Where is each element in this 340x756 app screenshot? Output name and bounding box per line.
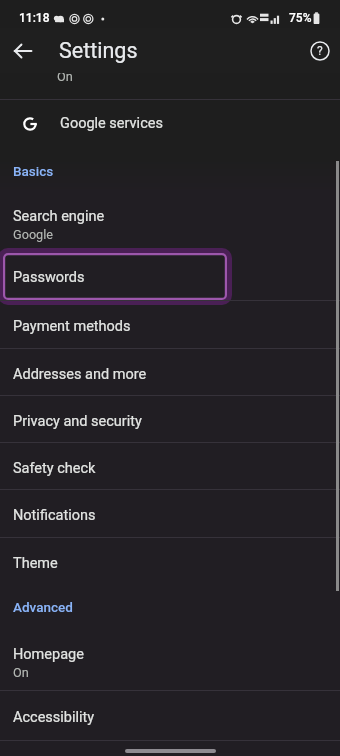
button[interactable]: Safety check [0,443,340,489]
staticText: Google services [60,115,163,132]
button[interactable]: Help [304,35,336,67]
staticText: On [57,69,73,84]
staticText: ? [317,44,323,58]
button[interactable]: Homepage [0,631,340,690]
staticText: 11:18 [19,11,50,25]
button[interactable]: Google services [0,100,340,148]
button[interactable]: Privacy and security [0,396,340,442]
staticText: 75% [289,11,312,25]
staticText: Google [13,227,54,242]
button[interactable]: Back [7,35,39,67]
button[interactable]: Accessibility [0,691,340,740]
staticText: Basics [13,163,54,179]
staticText: Accessibility [13,709,95,726]
staticText: Payment methods [13,318,131,335]
staticText: Passwords [13,269,85,286]
staticText: Theme [13,555,58,572]
button[interactable]: Passwords [3,253,227,300]
staticText: Safety check [13,460,96,477]
button[interactable]: Payment methods [0,301,340,348]
staticText: Notifications [13,507,96,524]
button[interactable]: Search engine [0,196,340,250]
staticText: Settings [59,38,138,63]
button[interactable]: Notifications [0,490,340,537]
staticText: Advanced [13,599,73,615]
staticText: Homepage [13,646,84,663]
staticText: Addresses and more [13,366,147,383]
button[interactable]: Theme [0,538,340,585]
staticText: Search engine [13,208,105,225]
button[interactable]: Addresses and more [0,349,340,395]
staticText: On [13,665,29,680]
staticText: Privacy and security [13,413,142,430]
